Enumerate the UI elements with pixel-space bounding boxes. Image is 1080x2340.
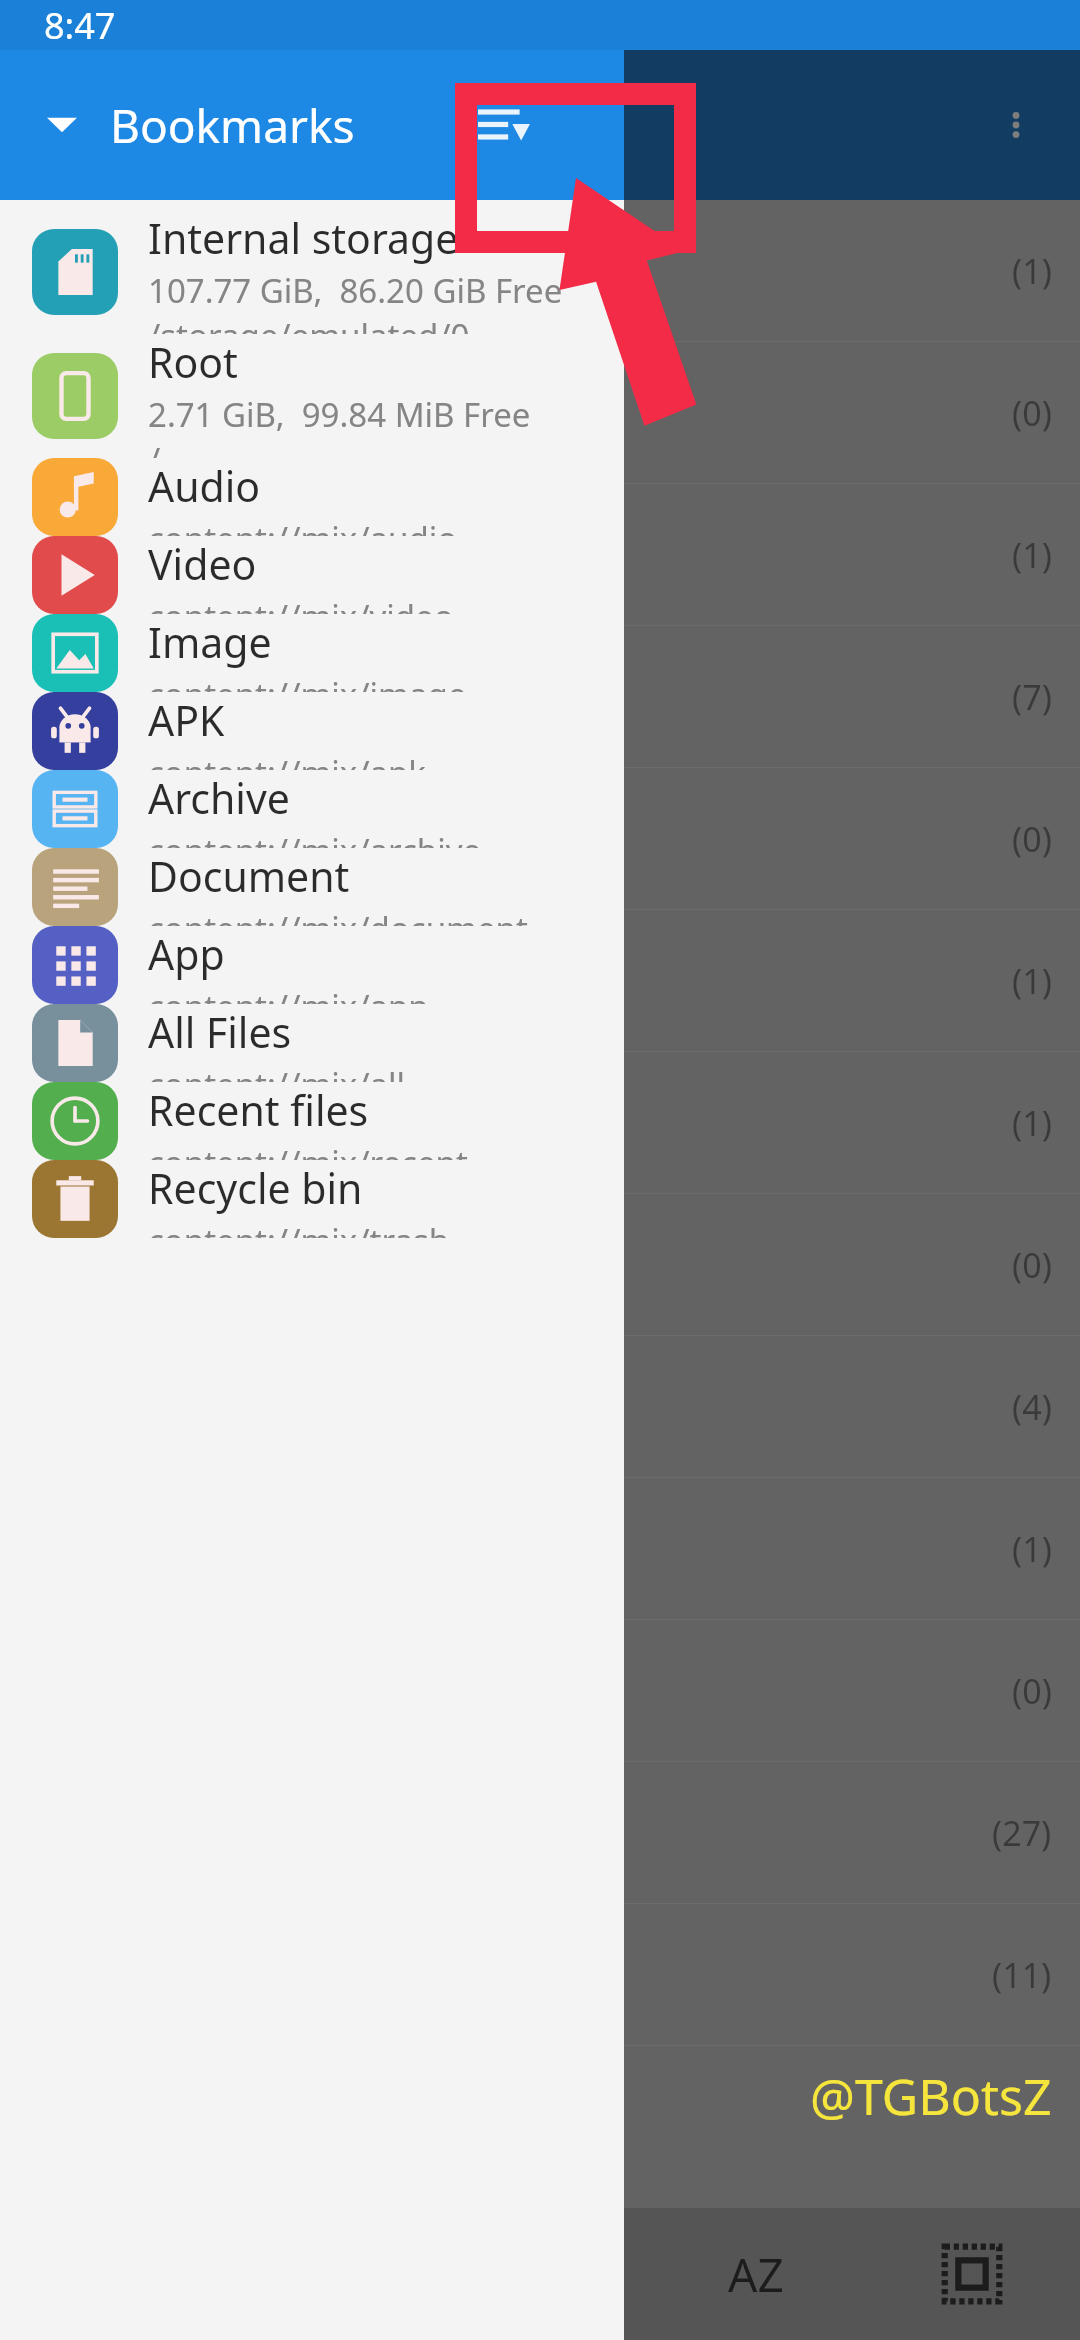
button[interactable]: Sort A to Z [648, 2208, 864, 2340]
staticText: Document [148, 848, 350, 904]
staticText: (1) [1012, 248, 1052, 294]
button[interactable]: (4) [0, 1336, 1080, 1478]
staticText: (1) [1012, 958, 1052, 1004]
staticText: Root [148, 334, 238, 390]
staticText: Recycle bin [148, 1160, 363, 1216]
staticText: content://mix/apk [148, 750, 426, 770]
button[interactable]: (0) [0, 768, 1080, 910]
button[interactable]: Document [0, 848, 624, 926]
staticText: content://mix/video [148, 594, 454, 614]
staticText: All Files [148, 1004, 292, 1060]
staticText: Bookmarks [110, 94, 355, 157]
staticText: content://mix/archive [148, 828, 482, 848]
button[interactable]: Video [0, 536, 624, 614]
staticText: Internal storage [148, 210, 459, 266]
staticText: (0) [1012, 390, 1052, 436]
button[interactable]: (1) [0, 484, 1080, 626]
button[interactable]: Image [0, 614, 624, 692]
button[interactable]: Refresh [432, 2208, 648, 2340]
button[interactable]: Collapse [30, 93, 94, 157]
staticText: (27) [992, 1810, 1052, 1856]
button[interactable]: Archive [0, 770, 624, 848]
staticText: (7) [1012, 674, 1052, 720]
button[interactable]: Audio [0, 458, 624, 536]
button[interactable]: (1) [0, 1478, 1080, 1620]
staticText: content://mix/image [148, 672, 467, 692]
button[interactable]: (7) [0, 626, 1080, 768]
button[interactable]: Select all [864, 2208, 1080, 2340]
staticText: Audio [148, 458, 261, 514]
button[interactable]: (11) [0, 1904, 1080, 2046]
button[interactable]: App [0, 926, 624, 1004]
staticText: @TGBotsZ [810, 2062, 1052, 2130]
staticText: AZ [728, 2243, 784, 2306]
staticText: Video [148, 536, 257, 592]
button[interactable]: (0) [0, 342, 1080, 484]
staticText: Image [148, 614, 272, 670]
button[interactable]: Internal storage [0, 210, 624, 334]
staticText: 107.77 GiB, 86.20 GiB Free [148, 268, 563, 313]
staticText: 2.71 GiB, 99.84 MiB Free [148, 392, 531, 437]
staticText: (1) [1012, 1526, 1052, 1572]
button[interactable]: Root [0, 334, 624, 458]
button[interactable]: More options [968, 77, 1064, 173]
staticText: 8:47 [44, 1, 116, 50]
button[interactable]: (0) [0, 1194, 1080, 1336]
button[interactable]: Sort [456, 77, 552, 173]
staticText: content://mix/recent [148, 1140, 468, 1160]
button[interactable]: (1) [0, 200, 1080, 342]
staticText: Recent files [148, 1082, 369, 1138]
button[interactable]: (27) [0, 1762, 1080, 1904]
staticText: content://mix/trash [148, 1218, 450, 1238]
button[interactable]: (1) [0, 1052, 1080, 1194]
button[interactable]: (0) [0, 1620, 1080, 1762]
staticText: (1) [1012, 1100, 1052, 1146]
staticText: APK [148, 692, 225, 748]
staticText: (4) [1012, 1384, 1052, 1430]
button[interactable]: Recent files [0, 1082, 624, 1160]
staticText: App [148, 926, 225, 982]
button[interactable]: APK [0, 692, 624, 770]
staticText: / [148, 437, 161, 458]
button[interactable]: (1) [0, 910, 1080, 1052]
button[interactable]: Recycle bin [0, 1160, 624, 1238]
staticText: content://mix/app [148, 984, 429, 1004]
staticText: (0) [1012, 1668, 1052, 1714]
staticText: (11) [992, 1952, 1052, 1998]
staticText: content://mix/all [148, 1062, 406, 1082]
staticText: /storage/emulated/0 [148, 313, 470, 334]
staticText: (0) [1012, 1242, 1052, 1288]
button[interactable]: All Files [0, 1004, 624, 1082]
staticText: Archive [148, 770, 290, 826]
staticText: (1) [1012, 532, 1052, 578]
staticText: (0) [1012, 816, 1052, 862]
staticText: content://mix/document [148, 906, 528, 926]
staticText: content://mix/audio [148, 516, 458, 536]
